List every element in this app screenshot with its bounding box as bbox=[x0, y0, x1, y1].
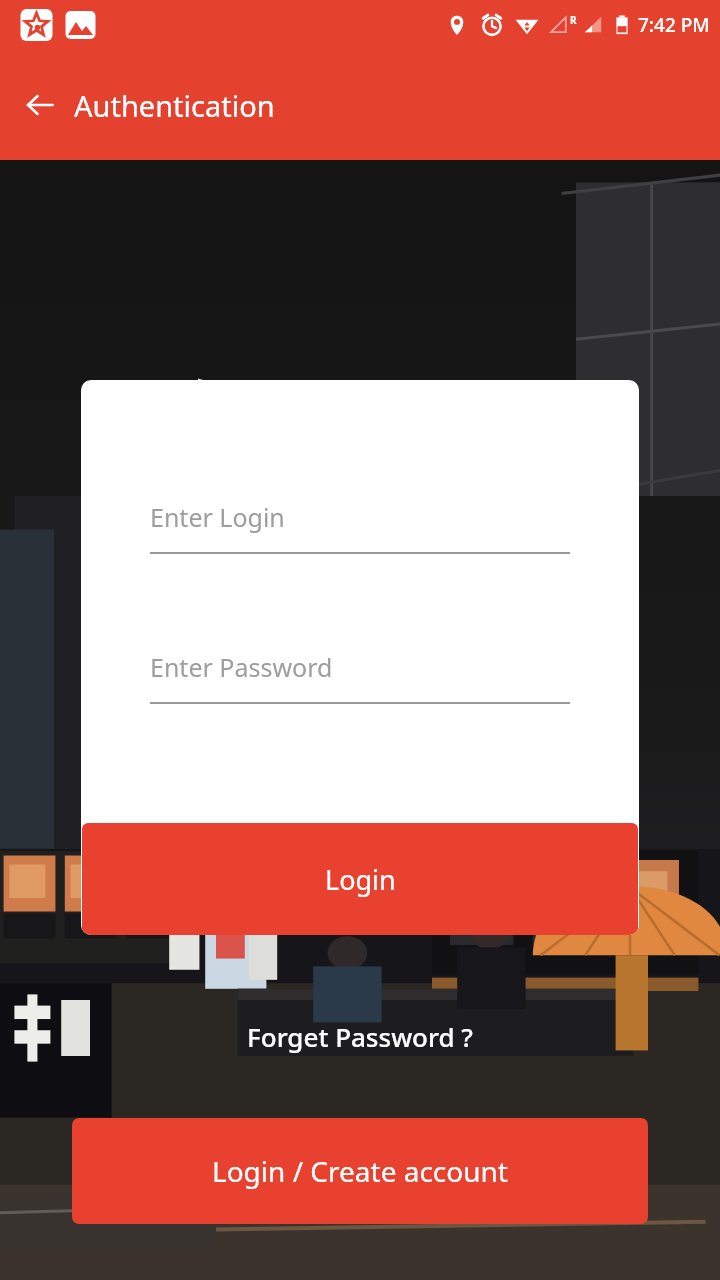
button[interactable]: Back bbox=[12, 77, 68, 133]
staticText: Authentication bbox=[74, 86, 275, 125]
staticText: R bbox=[570, 13, 577, 27]
staticText: 7:42 PM bbox=[638, 12, 710, 38]
staticText: Login / Create account bbox=[212, 1152, 508, 1190]
button[interactable]: Forget Password ? bbox=[237, 1015, 483, 1058]
button[interactable]: Enter Password bbox=[150, 650, 570, 705]
staticText: Enter Login bbox=[150, 500, 285, 534]
button[interactable]: Enter Login bbox=[150, 500, 570, 555]
staticText: Forget Password ? bbox=[247, 1019, 473, 1054]
staticText: Login bbox=[325, 861, 396, 898]
button[interactable]: Login / Create account bbox=[72, 1118, 648, 1224]
button[interactable]: Login bbox=[82, 823, 638, 935]
staticText: Enter Password bbox=[150, 650, 333, 684]
